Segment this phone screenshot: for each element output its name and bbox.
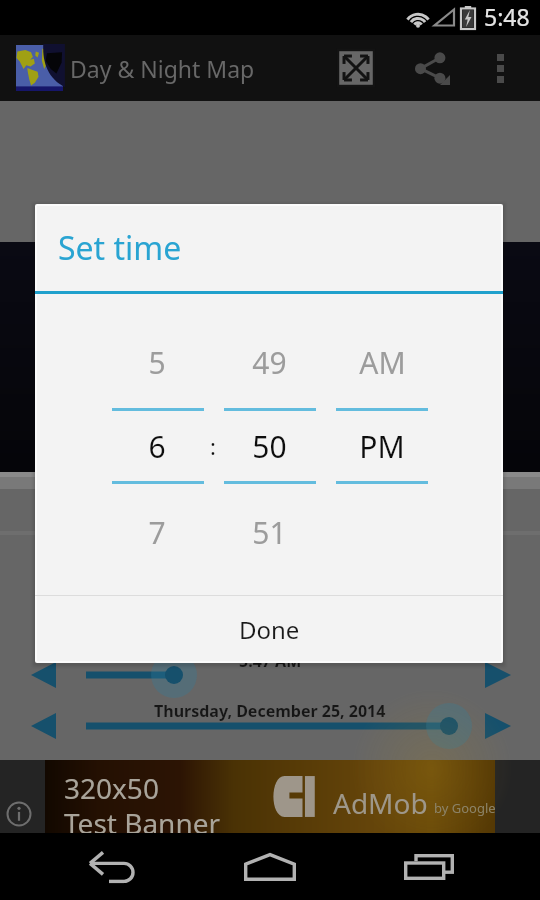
button[interactable]: 49: [219, 340, 319, 384]
button[interactable]: AM: [332, 340, 432, 384]
button[interactable]: Fullscreen: [318, 35, 394, 101]
button[interactable]: Home: [230, 833, 310, 900]
button[interactable]: Thursday, December 25, 2014: [154, 700, 386, 722]
button[interactable]: Day & Night Map: [16, 45, 63, 91]
staticText: 5:47 AM: [239, 650, 302, 672]
staticText: by Google: [434, 799, 496, 817]
button[interactable]: Previous: [22, 650, 66, 700]
staticText: 49: [252, 342, 287, 383]
button[interactable]: Back: [71, 833, 151, 900]
staticText: 320x50: [64, 769, 159, 807]
staticText: 7: [148, 512, 166, 553]
staticText: Test Banner: [64, 804, 221, 839]
button[interactable]: Next: [476, 701, 520, 751]
staticText: 6: [148, 426, 166, 467]
staticText: Day & Night Map: [70, 53, 255, 84]
staticText: AM: [359, 342, 406, 383]
button[interactable]: PM: [332, 424, 432, 468]
button[interactable]: Share: [394, 35, 470, 101]
staticText: Set time: [58, 226, 182, 270]
staticText: 50: [252, 426, 287, 467]
button[interactable]: Recent apps: [389, 833, 469, 900]
staticText: PM: [359, 426, 405, 467]
button[interactable]: 6: [107, 424, 207, 468]
button[interactable]: Previous: [22, 701, 66, 751]
staticText: Done: [239, 613, 300, 646]
button[interactable]: 51: [219, 510, 319, 554]
button[interactable]: Next: [476, 650, 520, 700]
staticText: :: [210, 431, 216, 461]
button[interactable]: 320x50: [45, 760, 495, 833]
staticText: AdMob: [333, 784, 428, 822]
button[interactable]: 5: [107, 340, 207, 384]
button[interactable]: 7: [107, 510, 207, 554]
staticText: 51: [252, 512, 287, 553]
button[interactable]: 50: [219, 424, 319, 468]
button[interactable]: Done: [35, 596, 503, 663]
staticText: 5:48: [484, 1, 530, 32]
button[interactable]: More options: [470, 35, 530, 101]
button[interactable]: :: [163, 424, 263, 468]
staticText: 5: [148, 342, 166, 383]
